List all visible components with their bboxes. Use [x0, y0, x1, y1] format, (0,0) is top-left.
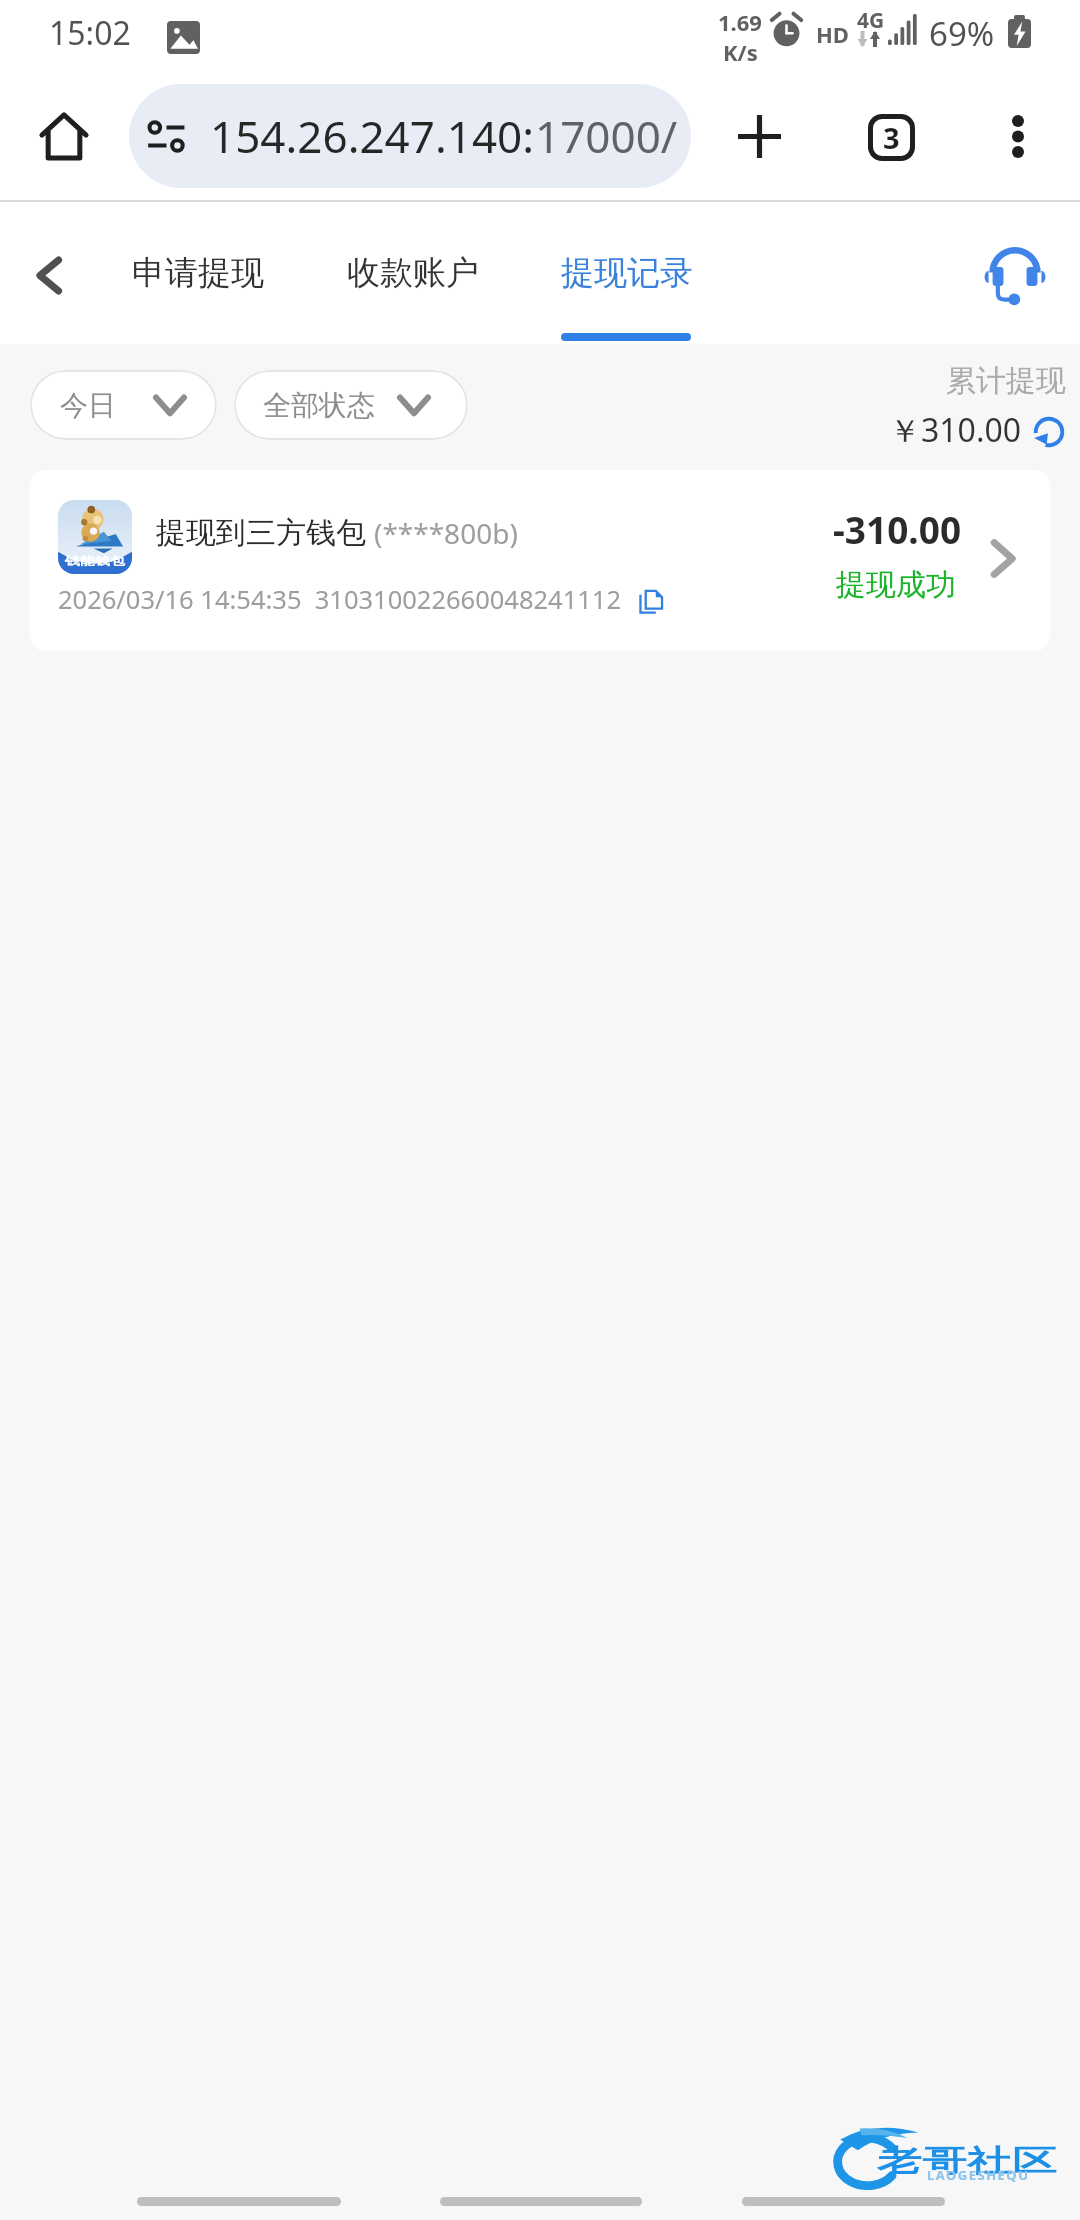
button[interactable]: Tabs: [856, 102, 926, 172]
button[interactable]: 收款账户: [347, 252, 479, 294]
staticText: 提现成功: [836, 566, 956, 604]
button[interactable]: Refresh: [1027, 410, 1071, 454]
staticText: 提现记录: [561, 252, 693, 294]
staticText: LAOGESHEQU: [927, 2166, 1030, 2184]
staticText: 申请提现: [132, 252, 264, 294]
button[interactable]: 申请提现: [132, 252, 264, 294]
button[interactable]: New tab: [724, 101, 794, 171]
button[interactable]: Copy: [636, 587, 666, 617]
button[interactable]: 今日: [30, 370, 217, 440]
staticText: 老哥社区: [877, 2143, 1057, 2180]
staticText: 收款账户: [347, 252, 479, 294]
staticText: K/s: [723, 37, 758, 67]
button[interactable]: 提现记录: [561, 252, 693, 294]
staticText: 69%: [929, 11, 995, 56]
button[interactable]: 钱能钱包: [30, 470, 1050, 651]
button[interactable]: Home: [440, 2197, 642, 2206]
button[interactable]: More options: [984, 102, 1052, 170]
staticText: 累计提现: [946, 362, 1066, 400]
button[interactable]: Back: [137, 2197, 341, 2206]
staticText: 2026/03/16 14:54:35 31031002266004824111…: [58, 582, 622, 617]
staticText: -310.00: [833, 504, 962, 554]
staticText: HD: [816, 19, 849, 49]
button[interactable]: 154.26.247.140:: [129, 84, 691, 188]
staticText: 17000/: [535, 106, 678, 166]
button[interactable]: Back: [9, 235, 89, 315]
button[interactable]: Recents: [742, 2197, 945, 2206]
staticText: ￥310.00: [889, 408, 1022, 452]
staticText: 全部状态: [263, 388, 375, 423]
staticText: 154.26.247.140:: [210, 106, 535, 166]
button[interactable]: Home: [33, 105, 95, 167]
staticText: 1.69: [718, 7, 762, 37]
staticText: 提现到三方钱包: [156, 514, 366, 552]
staticText: 4G: [857, 6, 885, 35]
staticText: 3: [883, 118, 900, 157]
staticText: 15:02: [49, 11, 131, 55]
button[interactable]: Customer service: [973, 232, 1057, 316]
button[interactable]: 全部状态: [234, 370, 468, 440]
staticText: (****800b): [374, 514, 518, 552]
staticText: 钱能钱包: [65, 554, 125, 568]
staticText: 今日: [60, 388, 116, 423]
